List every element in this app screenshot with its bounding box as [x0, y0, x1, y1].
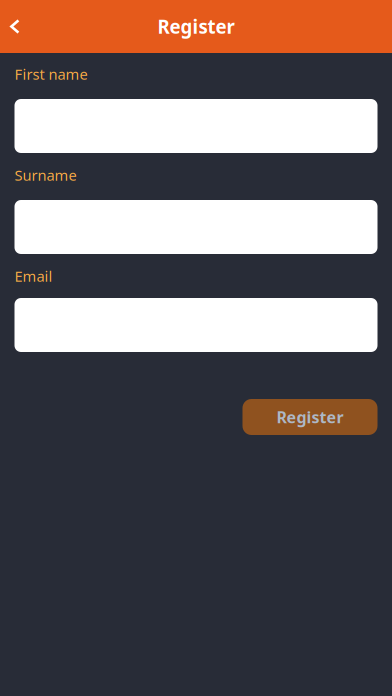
- staticText: Register: [276, 406, 343, 428]
- button[interactable]: First name: [14, 99, 377, 153]
- button[interactable]: Register: [242, 399, 377, 435]
- button[interactable]: Back: [0, 5, 36, 47]
- button[interactable]: Surname: [14, 200, 377, 254]
- staticText: Register: [157, 14, 234, 39]
- staticText: Email: [14, 266, 52, 286]
- staticText: Surname: [14, 165, 76, 185]
- staticText: First name: [14, 64, 87, 84]
- button[interactable]: Email: [14, 298, 377, 352]
